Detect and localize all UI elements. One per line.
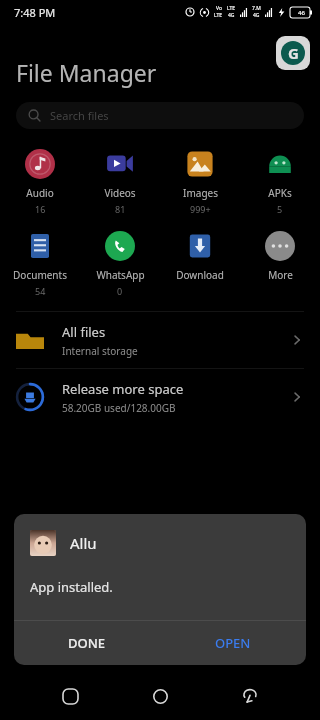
staticText: All files <box>62 323 106 341</box>
staticText: 4G <box>253 12 260 19</box>
button[interactable]: App shortcut <box>276 36 310 70</box>
button[interactable]: Home <box>140 676 180 716</box>
button[interactable]: OPEN <box>160 621 306 665</box>
staticText: LTE <box>227 5 236 12</box>
button[interactable]: All files <box>0 312 320 368</box>
staticText: Search files <box>50 108 109 123</box>
staticText: 4G <box>228 12 235 19</box>
staticText: DONE <box>68 634 106 652</box>
staticText: Download <box>176 268 224 282</box>
staticText: Allu <box>70 533 97 553</box>
staticText: 0 <box>117 285 123 297</box>
staticText: G <box>288 43 299 63</box>
staticText: Vo <box>216 5 222 12</box>
button[interactable]: WhatsApp <box>80 229 160 299</box>
staticText: 999+ <box>190 203 211 215</box>
button[interactable]: Download <box>160 229 240 284</box>
staticText: 16 <box>35 203 46 215</box>
staticText: OPEN <box>215 634 251 652</box>
staticText: Images <box>183 186 218 200</box>
button[interactable]: Images <box>160 147 240 217</box>
staticText: App installed. <box>30 578 113 596</box>
staticText: 46 <box>298 9 305 17</box>
staticText: More <box>268 268 293 282</box>
staticText: LTE <box>214 12 223 19</box>
button[interactable]: Recents <box>50 676 90 716</box>
button[interactable]: DONE <box>14 621 160 665</box>
staticText: Internal storage <box>62 344 138 358</box>
staticText: Audio <box>26 186 54 200</box>
button[interactable]: APKs <box>240 147 320 217</box>
staticText: File Manager <box>16 57 157 88</box>
staticText: 81 <box>115 203 126 215</box>
staticText: 7.M <box>252 5 261 12</box>
button[interactable]: Back <box>230 676 270 716</box>
staticText: 5 <box>277 203 283 215</box>
button[interactable]: Videos <box>80 147 160 217</box>
button[interactable]: Release more space <box>0 369 320 425</box>
staticText: Release more space <box>62 380 184 398</box>
staticText: Videos <box>104 186 136 200</box>
button[interactable]: Search files <box>16 102 304 129</box>
staticText: Documents <box>13 268 67 282</box>
staticText: 7:48 PM <box>14 5 56 20</box>
staticText: WhatsApp <box>96 268 145 282</box>
button[interactable]: Audio <box>0 147 80 217</box>
staticText: 58.20GB used/128.00GB <box>62 401 176 415</box>
button[interactable]: More <box>240 229 320 284</box>
button[interactable]: Documents <box>0 229 80 299</box>
staticText: APKs <box>268 186 292 200</box>
staticText: 54 <box>35 285 46 297</box>
